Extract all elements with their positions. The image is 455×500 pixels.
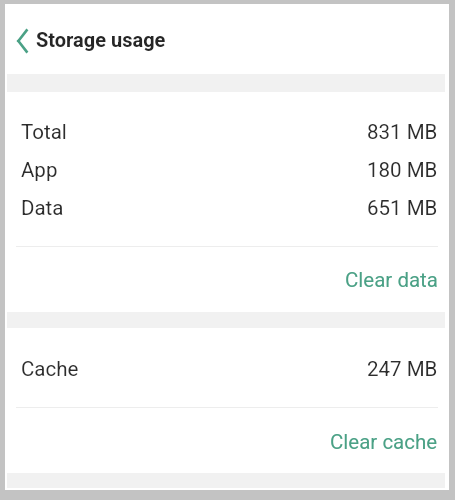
staticText: Storage usage xyxy=(36,28,166,51)
staticText: Cache xyxy=(21,357,79,381)
button[interactable]: Data xyxy=(5,189,449,227)
button[interactable]: App xyxy=(5,151,449,189)
staticText: Clear data xyxy=(345,268,438,292)
button[interactable]: Clear data xyxy=(5,247,449,309)
button[interactable]: Back xyxy=(5,16,36,62)
button[interactable]: Clear cache xyxy=(5,408,449,472)
staticText: 247 MB xyxy=(367,357,438,381)
staticText: Total xyxy=(21,120,67,144)
staticText: 180 MB xyxy=(367,158,438,182)
button[interactable]: Cache xyxy=(5,350,449,388)
button[interactable]: Total xyxy=(5,113,449,151)
staticText: 831 MB xyxy=(367,120,438,144)
staticText: Data xyxy=(21,196,64,220)
staticText: App xyxy=(21,158,58,182)
staticText: 651 MB xyxy=(367,196,438,220)
staticText: Clear cache xyxy=(330,430,438,454)
